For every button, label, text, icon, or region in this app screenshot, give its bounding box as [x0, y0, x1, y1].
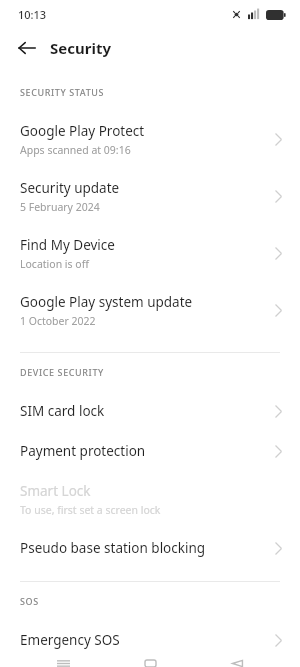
staticText: Location is off [20, 257, 89, 271]
button[interactable]: Emergency SOS [0, 620, 300, 660]
button[interactable]: Pseudo base station blocking [0, 528, 300, 568]
staticText: Pseudo base station blocking [20, 539, 206, 557]
staticText: Payment protection [20, 442, 146, 460]
staticText: 1 October 2022 [20, 314, 96, 328]
button[interactable]: Google Play Protect [0, 111, 300, 168]
staticText: Smart Lock [20, 482, 91, 500]
button[interactable]: Home [126, 660, 174, 667]
staticText: DEVICE SECURITY [20, 366, 104, 378]
staticText: 10:13 [18, 7, 47, 22]
staticText: Apps scanned at 09:16 [20, 143, 131, 157]
staticText: SIM card lock [20, 402, 105, 420]
staticText: To use, first set a screen lock [20, 503, 161, 517]
button[interactable]: Back [213, 660, 261, 667]
button[interactable]: SIM card lock [0, 391, 300, 431]
button[interactable]: Security update [0, 168, 300, 225]
button[interactable]: Payment protection [0, 431, 300, 471]
button[interactable]: Google Play system update [0, 282, 300, 339]
button[interactable]: Back [8, 29, 46, 67]
staticText: Find My Device [20, 236, 115, 254]
staticText: Google Play Protect [20, 122, 145, 140]
staticText: Security update [20, 179, 120, 197]
staticText: Security [50, 38, 111, 58]
staticText: 5 February 2024 [20, 200, 100, 214]
staticText: SECURITY STATUS [20, 86, 105, 98]
staticText: SOS [20, 595, 39, 607]
staticText: Google Play system update [20, 293, 193, 311]
button[interactable]: Recents [39, 660, 87, 667]
button[interactable]: Find My Device [0, 225, 300, 282]
staticText: Emergency SOS [20, 631, 120, 649]
